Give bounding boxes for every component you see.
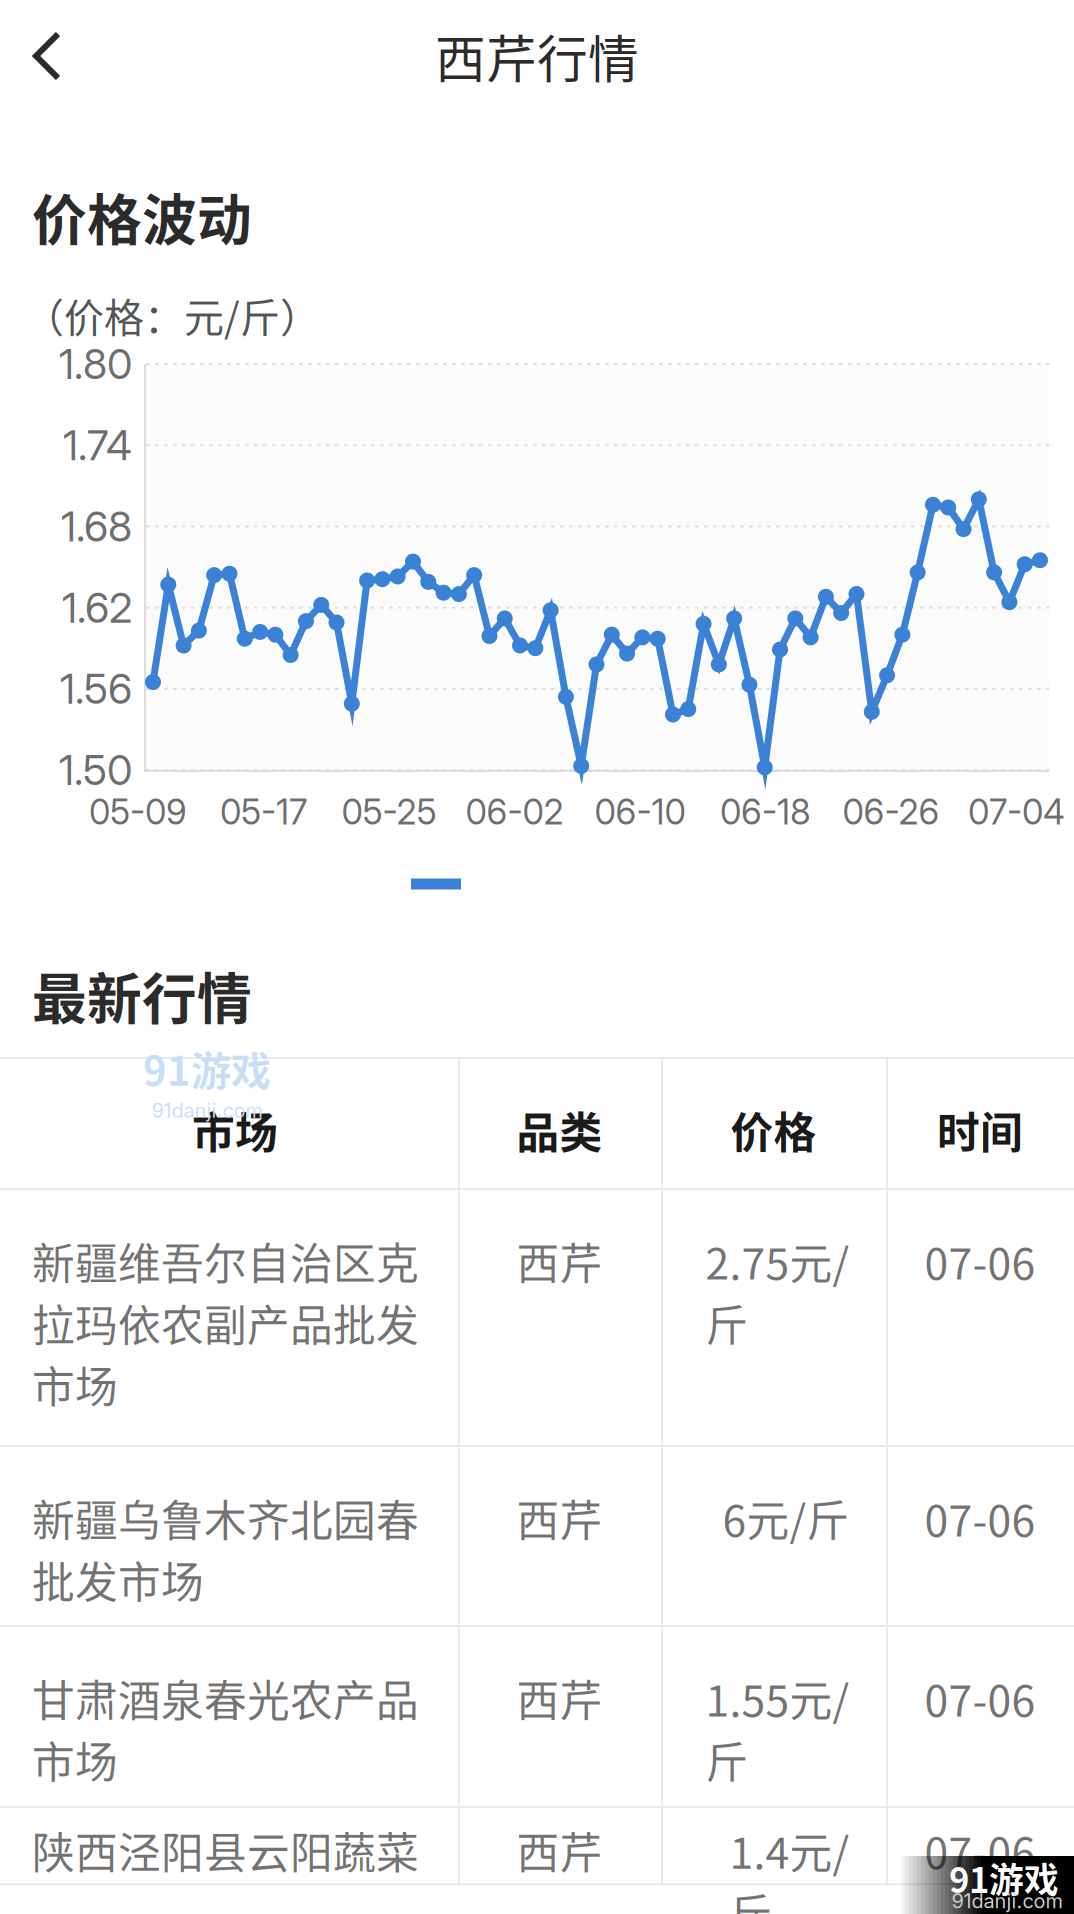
staticText: 91游戏 [949,1853,1059,1903]
staticText: 最新行情 [32,955,252,1035]
staticText: 1.80 [59,339,132,389]
staticText: 西芹 [516,1819,602,1881]
staticText: 05-09 [89,791,187,833]
staticText: 市场 [192,1099,278,1161]
staticText: 05-25 [341,791,436,833]
staticText: 1.56 [60,664,132,714]
staticText: 07-06 [924,1819,1035,1881]
staticText: 07-06 [924,1667,1035,1729]
staticText: 05-17 [220,791,307,833]
staticText: 06-26 [842,791,939,833]
staticText: 07-06 [924,1487,1035,1549]
staticText: 新疆维吾尔自治区克拉玛依农副产品批发市场 [32,1230,419,1415]
staticText: 甘肃酒泉春光农产品市场 [32,1667,419,1791]
staticText: 6元/斤 [722,1487,849,1549]
staticText: 91danji.com [951,1889,1062,1913]
staticText: 1.68 [61,501,132,551]
staticText: 新疆乌鲁木齐北园春批发市场 [32,1487,419,1611]
staticText: 1.55元/斤 [705,1667,849,1791]
staticText: 西芹 [516,1487,602,1549]
staticText: 1.50 [59,745,132,795]
staticText: 陕西泾阳县云阳蔬菜 [32,1819,419,1881]
staticText: 西芹 [516,1667,602,1729]
staticText: 价格 [730,1099,816,1161]
staticText: 2.75元/斤 [705,1230,849,1354]
staticText: 西芹行情 [435,19,639,93]
staticText: 06-10 [594,791,685,833]
staticText: 07-04 [968,791,1065,833]
button[interactable]: Back [28,26,104,86]
staticText: 时间 [937,1099,1023,1161]
staticText: 1.62 [62,583,132,633]
staticText: 价格波动 [32,176,252,256]
staticText: 91danji.com [151,1098,262,1123]
staticText: 07-06 [924,1230,1035,1292]
staticText: 91游戏 [143,1039,271,1097]
staticText: （价格：元/斤） [24,286,320,344]
staticText: 06-18 [720,791,811,833]
staticText: 1.74 [63,420,132,470]
staticText: 06-02 [465,791,563,833]
staticText: 1.4元/斤 [729,1819,849,1914]
staticText: 品类 [516,1099,602,1161]
staticText: 西芹 [516,1230,602,1292]
